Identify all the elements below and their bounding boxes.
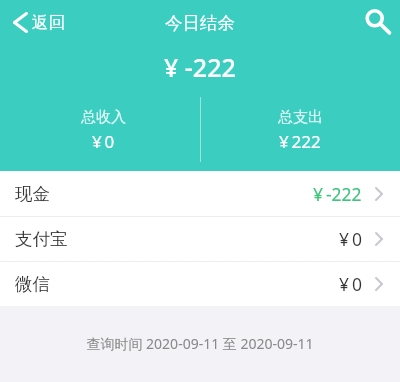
staticText: ¥ -222 <box>313 182 362 206</box>
button[interactable]: 支付宝 <box>0 217 400 261</box>
button[interactable]: 返回 Back <box>6 7 72 38</box>
button[interactable]: 现金 <box>0 171 400 216</box>
staticText: ¥ -222 <box>164 50 236 84</box>
staticText: 返回 <box>32 12 65 33</box>
staticText: ¥ 0 <box>339 272 362 296</box>
button[interactable]: 搜索 Search <box>360 4 396 40</box>
staticText: 现金 <box>15 183 50 205</box>
staticText: 总支出 <box>278 108 323 127</box>
staticText: ¥ 222 <box>279 130 321 153</box>
staticText: 微信 <box>15 273 50 295</box>
button[interactable]: 微信 <box>0 262 400 306</box>
staticText: ¥ 0 <box>339 227 362 251</box>
staticText: ¥ 0 <box>92 130 115 153</box>
staticText: 查询时间 2020-09-11 至 2020-09-11 <box>86 334 314 353</box>
staticText: 支付宝 <box>15 228 68 250</box>
staticText: 今日结余 <box>165 12 235 34</box>
staticText: 总收入 <box>81 108 126 127</box>
